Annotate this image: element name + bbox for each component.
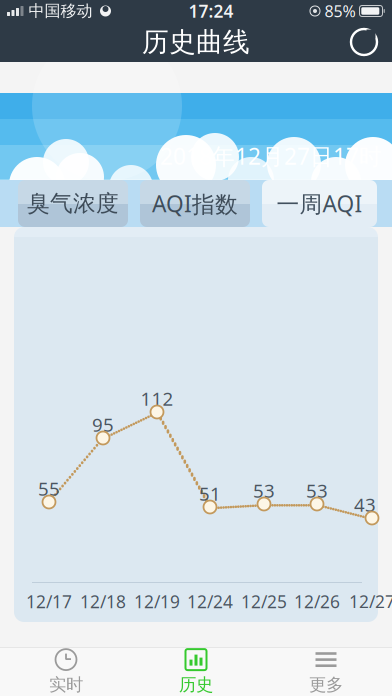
staticText: 53 xyxy=(306,478,328,503)
staticText: 12/24 xyxy=(187,590,233,613)
button[interactable]: 实时 xyxy=(1,648,131,696)
staticText: AQI指数 xyxy=(152,188,238,219)
staticText: 53 xyxy=(253,478,275,503)
button[interactable]: 臭气浓度 xyxy=(18,180,128,227)
staticText: 12/19 xyxy=(134,590,180,613)
staticText: 实时 xyxy=(49,674,83,695)
staticText: 一周AQI xyxy=(276,188,362,218)
staticText: 17:24 xyxy=(188,0,233,22)
staticText: 历史曲线 xyxy=(142,26,250,58)
staticText: 12/18 xyxy=(80,590,126,613)
staticText: 112 xyxy=(140,386,173,411)
staticText: 85% xyxy=(324,0,355,22)
staticText: 12/25 xyxy=(241,590,287,613)
staticText: 55 xyxy=(38,476,60,501)
staticText: 更多 xyxy=(309,674,343,695)
staticText: 臭气浓度 xyxy=(27,190,119,217)
button[interactable]: 更多 xyxy=(261,648,391,696)
staticText: 中国移动 xyxy=(28,1,92,21)
button[interactable]: AQI指数 xyxy=(140,180,250,227)
staticText: 2018年12月27日17时 xyxy=(160,141,382,171)
staticText: 12/26 xyxy=(294,590,340,613)
staticText: 51 xyxy=(199,481,221,506)
staticText: 12/17 xyxy=(26,590,72,613)
button[interactable]: 一周AQI xyxy=(262,180,377,227)
staticText: 12/27 xyxy=(349,590,392,613)
button[interactable]: 刷新 xyxy=(342,22,386,62)
staticText: 历史 xyxy=(179,674,213,695)
button[interactable]: 历史 xyxy=(131,648,261,696)
staticText: 43 xyxy=(354,492,376,517)
staticText: 95 xyxy=(92,412,114,437)
